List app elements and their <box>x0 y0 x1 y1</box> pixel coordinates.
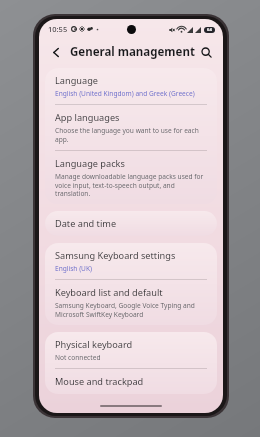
staticText: Not connected <box>55 353 101 362</box>
staticText: General management <box>70 44 195 60</box>
button[interactable]: Language packs <box>45 151 217 204</box>
staticText: English (United Kingdom) and Greek (Gree… <box>55 89 195 98</box>
staticText: Date and time <box>55 217 117 230</box>
staticText: Language <box>55 74 98 87</box>
staticText: 64 <box>207 27 212 33</box>
staticText: English (UK) <box>55 264 93 273</box>
staticText: Choose the language you want to use for … <box>55 126 207 144</box>
staticText: Samsung Keyboard settings <box>55 249 176 262</box>
button[interactable]: Language <box>45 68 217 104</box>
button[interactable]: Date and time <box>45 211 217 236</box>
button[interactable]: App languages <box>45 105 217 150</box>
staticText: Language packs <box>55 157 125 170</box>
button[interactable]: Back <box>47 43 65 61</box>
staticText: Physical keyboard <box>55 338 133 351</box>
staticText: Keyboard list and default <box>55 286 163 299</box>
staticText: Samsung Keyboard, Google Voice Typing an… <box>55 301 207 319</box>
button[interactable]: Samsung Keyboard settings <box>45 243 217 279</box>
button[interactable]: Search <box>197 43 215 61</box>
staticText: Mouse and trackpad <box>55 375 144 388</box>
button[interactable]: Physical keyboard <box>45 332 217 368</box>
button[interactable]: Mouse and trackpad <box>45 369 217 394</box>
button[interactable]: Keyboard list and default <box>45 280 217 325</box>
staticText: Manage downloadable language packs used … <box>55 172 207 198</box>
staticText: 10:55 <box>48 24 68 34</box>
staticText: App languages <box>55 111 120 124</box>
